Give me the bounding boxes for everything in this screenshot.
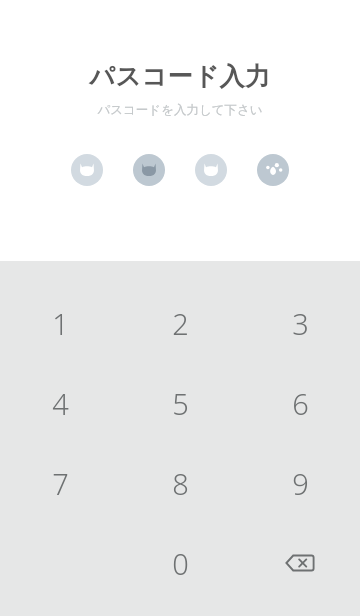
other: Entered digit — [133, 154, 165, 186]
button[interactable]: 5 — [120, 363, 240, 443]
other: Empty digit — [195, 154, 227, 186]
button[interactable]: 8 — [120, 443, 240, 523]
button[interactable]: 6 — [240, 363, 360, 443]
button[interactable]: 0 — [120, 523, 240, 603]
button[interactable]: 7 — [0, 443, 120, 523]
button[interactable]: 1 — [0, 283, 120, 363]
staticText: 7 — [52, 464, 69, 503]
staticText: 9 — [292, 464, 309, 503]
button[interactable]: 4 — [0, 363, 120, 443]
staticText: 6 — [292, 384, 309, 423]
button[interactable]: 3 — [240, 283, 360, 363]
staticText: 0 — [172, 544, 189, 583]
staticText: 5 — [172, 384, 189, 423]
staticText: 1 — [52, 304, 69, 343]
staticText: パスコード入力 — [89, 61, 271, 92]
other: Entered digit — [257, 154, 289, 186]
staticText: 4 — [52, 384, 69, 423]
staticText: 2 — [172, 304, 189, 343]
button[interactable]: 2 — [120, 283, 240, 363]
button[interactable]: 9 — [240, 443, 360, 523]
staticText: 3 — [292, 304, 309, 343]
button[interactable]: Backspace — [240, 523, 360, 603]
staticText: 8 — [172, 464, 189, 503]
staticText: パスコードを入力して下さい — [97, 102, 263, 118]
other: Empty digit — [71, 154, 103, 186]
